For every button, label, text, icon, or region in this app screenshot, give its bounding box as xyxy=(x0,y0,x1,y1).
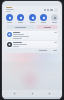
button[interactable]: Bluetooth xyxy=(17,14,24,21)
button[interactable] xyxy=(6,31,58,40)
button[interactable]: Auto-rotate xyxy=(51,14,58,21)
button[interactable] xyxy=(36,49,49,52)
button[interactable] xyxy=(51,49,58,52)
button[interactable]: Home xyxy=(27,90,38,97)
button[interactable] xyxy=(6,41,58,48)
button[interactable]: Back xyxy=(9,90,20,97)
button[interactable]: Do Not Disturb xyxy=(29,14,36,21)
button[interactable] xyxy=(36,25,58,29)
button[interactable]: Wi-Fi xyxy=(6,14,13,21)
button[interactable] xyxy=(6,25,35,29)
button[interactable]: Recents xyxy=(44,90,55,97)
button[interactable]: Flashlight xyxy=(40,14,47,21)
